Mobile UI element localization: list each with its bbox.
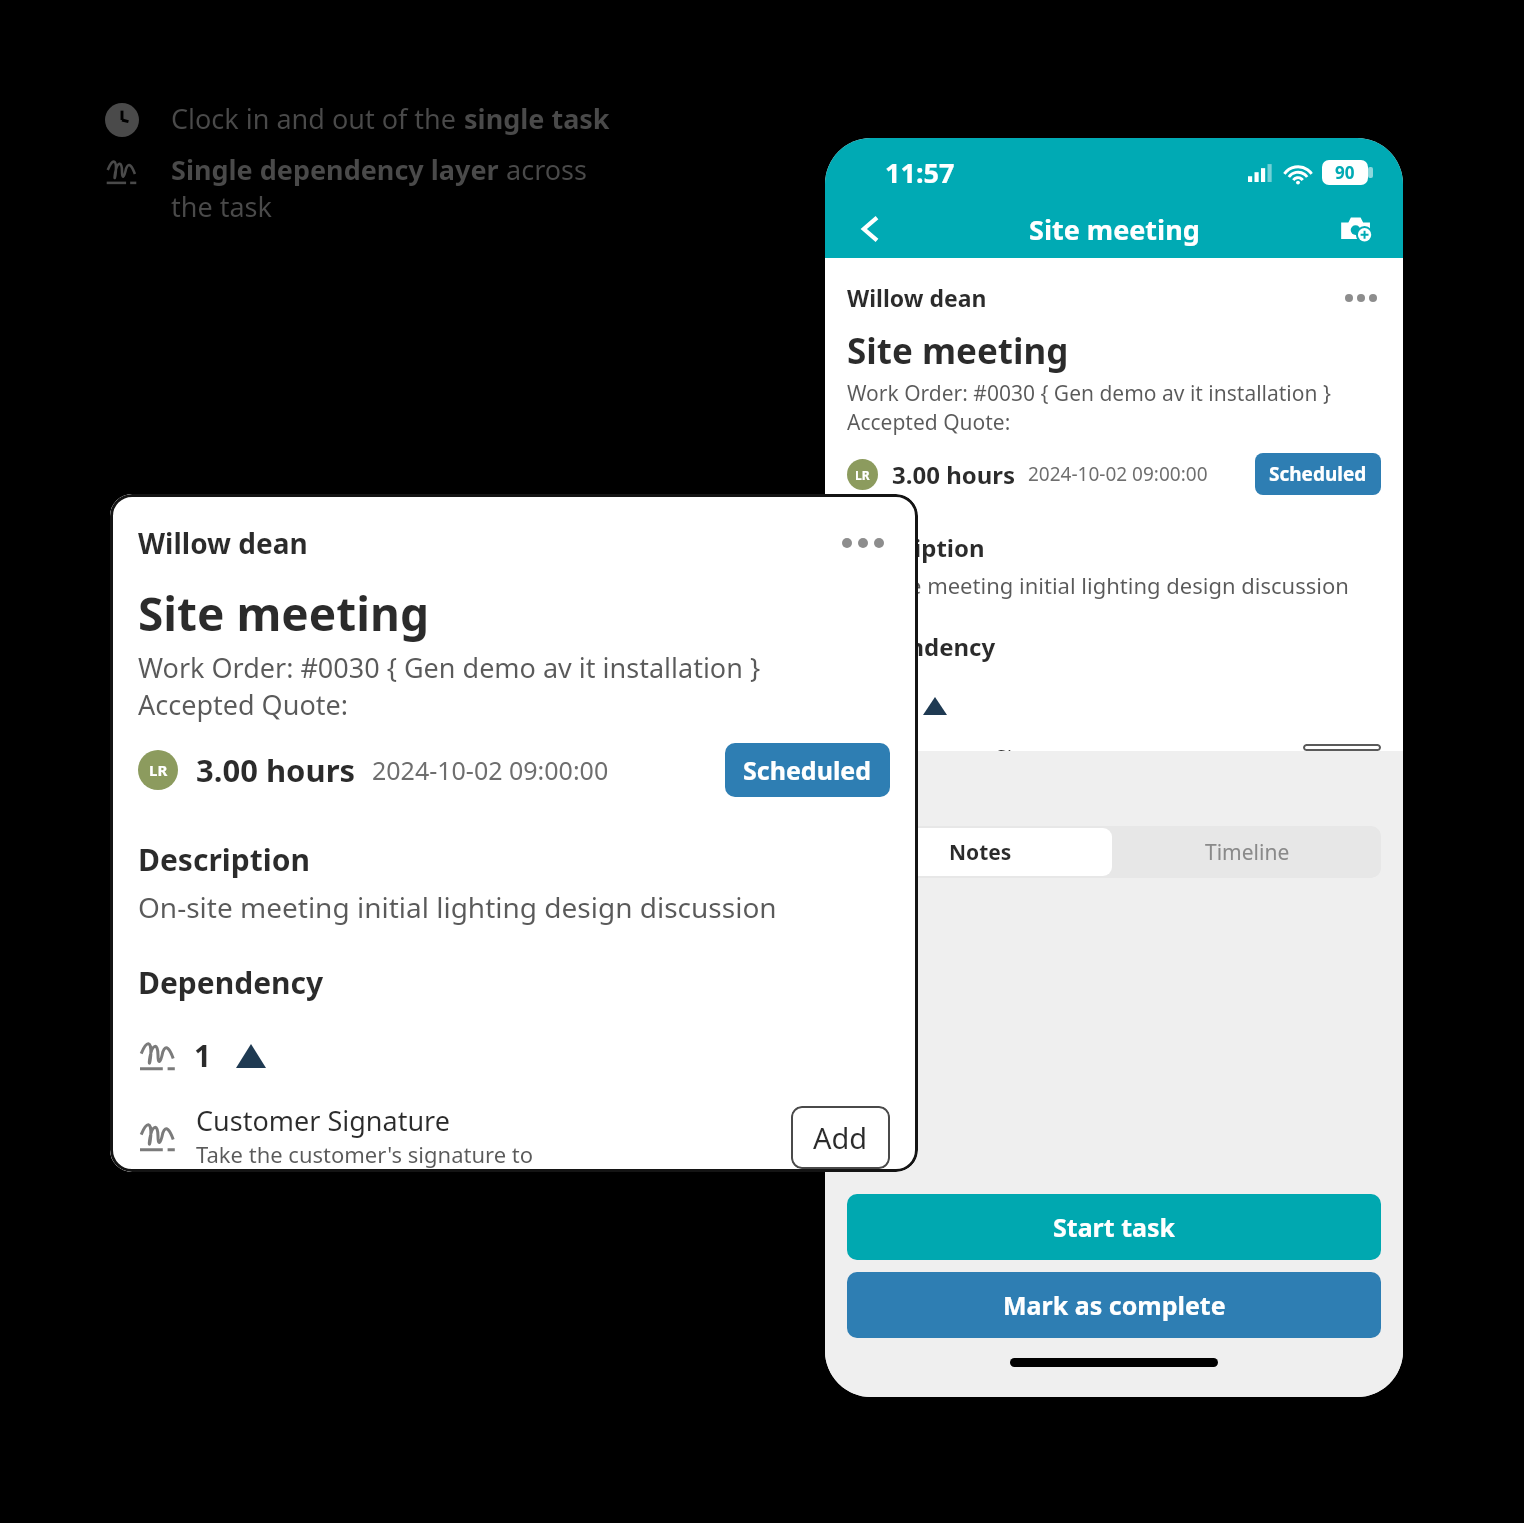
button[interactable]: Back bbox=[847, 205, 895, 253]
button[interactable]: Scheduled bbox=[1255, 453, 1381, 495]
staticText: 1 bbox=[194, 1035, 212, 1076]
staticText: Description bbox=[847, 531, 985, 564]
staticText: 90 bbox=[1335, 161, 1355, 184]
staticText: Timeline bbox=[1205, 838, 1290, 867]
staticText: Scheduled bbox=[743, 753, 872, 787]
staticText: Willow dean bbox=[847, 282, 987, 313]
button[interactable]: More options bbox=[836, 526, 890, 560]
button[interactable]: More options bbox=[1341, 283, 1381, 313]
staticText: Site meeting bbox=[847, 327, 1069, 375]
staticText: Dependency bbox=[847, 630, 996, 663]
staticText: 3.00 hours bbox=[196, 749, 356, 791]
button[interactable]: Add photo bbox=[1333, 205, 1381, 253]
staticText: Work Order: #0030 { Gen demo av it insta… bbox=[138, 649, 761, 686]
button[interactable]: Start task bbox=[847, 1194, 1381, 1260]
staticText: Accepted Quote: bbox=[138, 686, 348, 723]
staticText: Customer Signature bbox=[196, 1102, 450, 1139]
staticText: Site meeting bbox=[138, 582, 429, 645]
staticText: On-site meeting initial lighting design … bbox=[847, 570, 1349, 600]
staticText: Clock in and out of the bbox=[171, 100, 464, 137]
staticText: Site meeting bbox=[1029, 211, 1200, 248]
staticText: Work Order: #0030 { Gen demo av it insta… bbox=[847, 379, 1331, 408]
staticText: Take the customer's signature to bbox=[196, 1139, 534, 1169]
staticText: the task bbox=[171, 188, 272, 225]
staticText: 3.00 hours bbox=[892, 458, 1016, 491]
staticText: Start task bbox=[1053, 1210, 1176, 1244]
staticText: 2024-10-02 09:00:00 bbox=[1028, 461, 1208, 487]
staticText: Single dependency layer bbox=[171, 151, 499, 188]
staticText: across bbox=[499, 151, 587, 188]
button[interactable]: Notes bbox=[849, 828, 1112, 876]
staticText: Add bbox=[813, 1118, 868, 1157]
staticText: Mark as complete bbox=[1003, 1288, 1226, 1322]
staticText: Willow dean bbox=[138, 524, 308, 562]
button[interactable]: Mark as complete bbox=[847, 1272, 1381, 1338]
button[interactable]: Scheduled bbox=[725, 743, 890, 797]
staticText: Notes bbox=[949, 838, 1012, 867]
staticText: LR bbox=[855, 467, 870, 483]
staticText: single task bbox=[464, 100, 610, 137]
staticText: Description bbox=[138, 839, 310, 880]
staticText: On-site meeting initial lighting design … bbox=[138, 888, 777, 926]
staticText: Scheduled bbox=[1269, 461, 1367, 487]
staticText: Customer Signature bbox=[893, 744, 1091, 751]
staticText: 2024-10-02 09:00:00 bbox=[372, 753, 609, 787]
staticText: Accepted Quote: bbox=[847, 408, 1011, 437]
button[interactable]: Add bbox=[791, 1106, 890, 1169]
button[interactable]: Timeline bbox=[1114, 826, 1381, 878]
staticText: Dependency bbox=[138, 962, 324, 1003]
staticText: 11:57 bbox=[885, 154, 955, 191]
staticText: LR bbox=[149, 760, 168, 780]
button[interactable]: Add bbox=[1303, 744, 1381, 751]
